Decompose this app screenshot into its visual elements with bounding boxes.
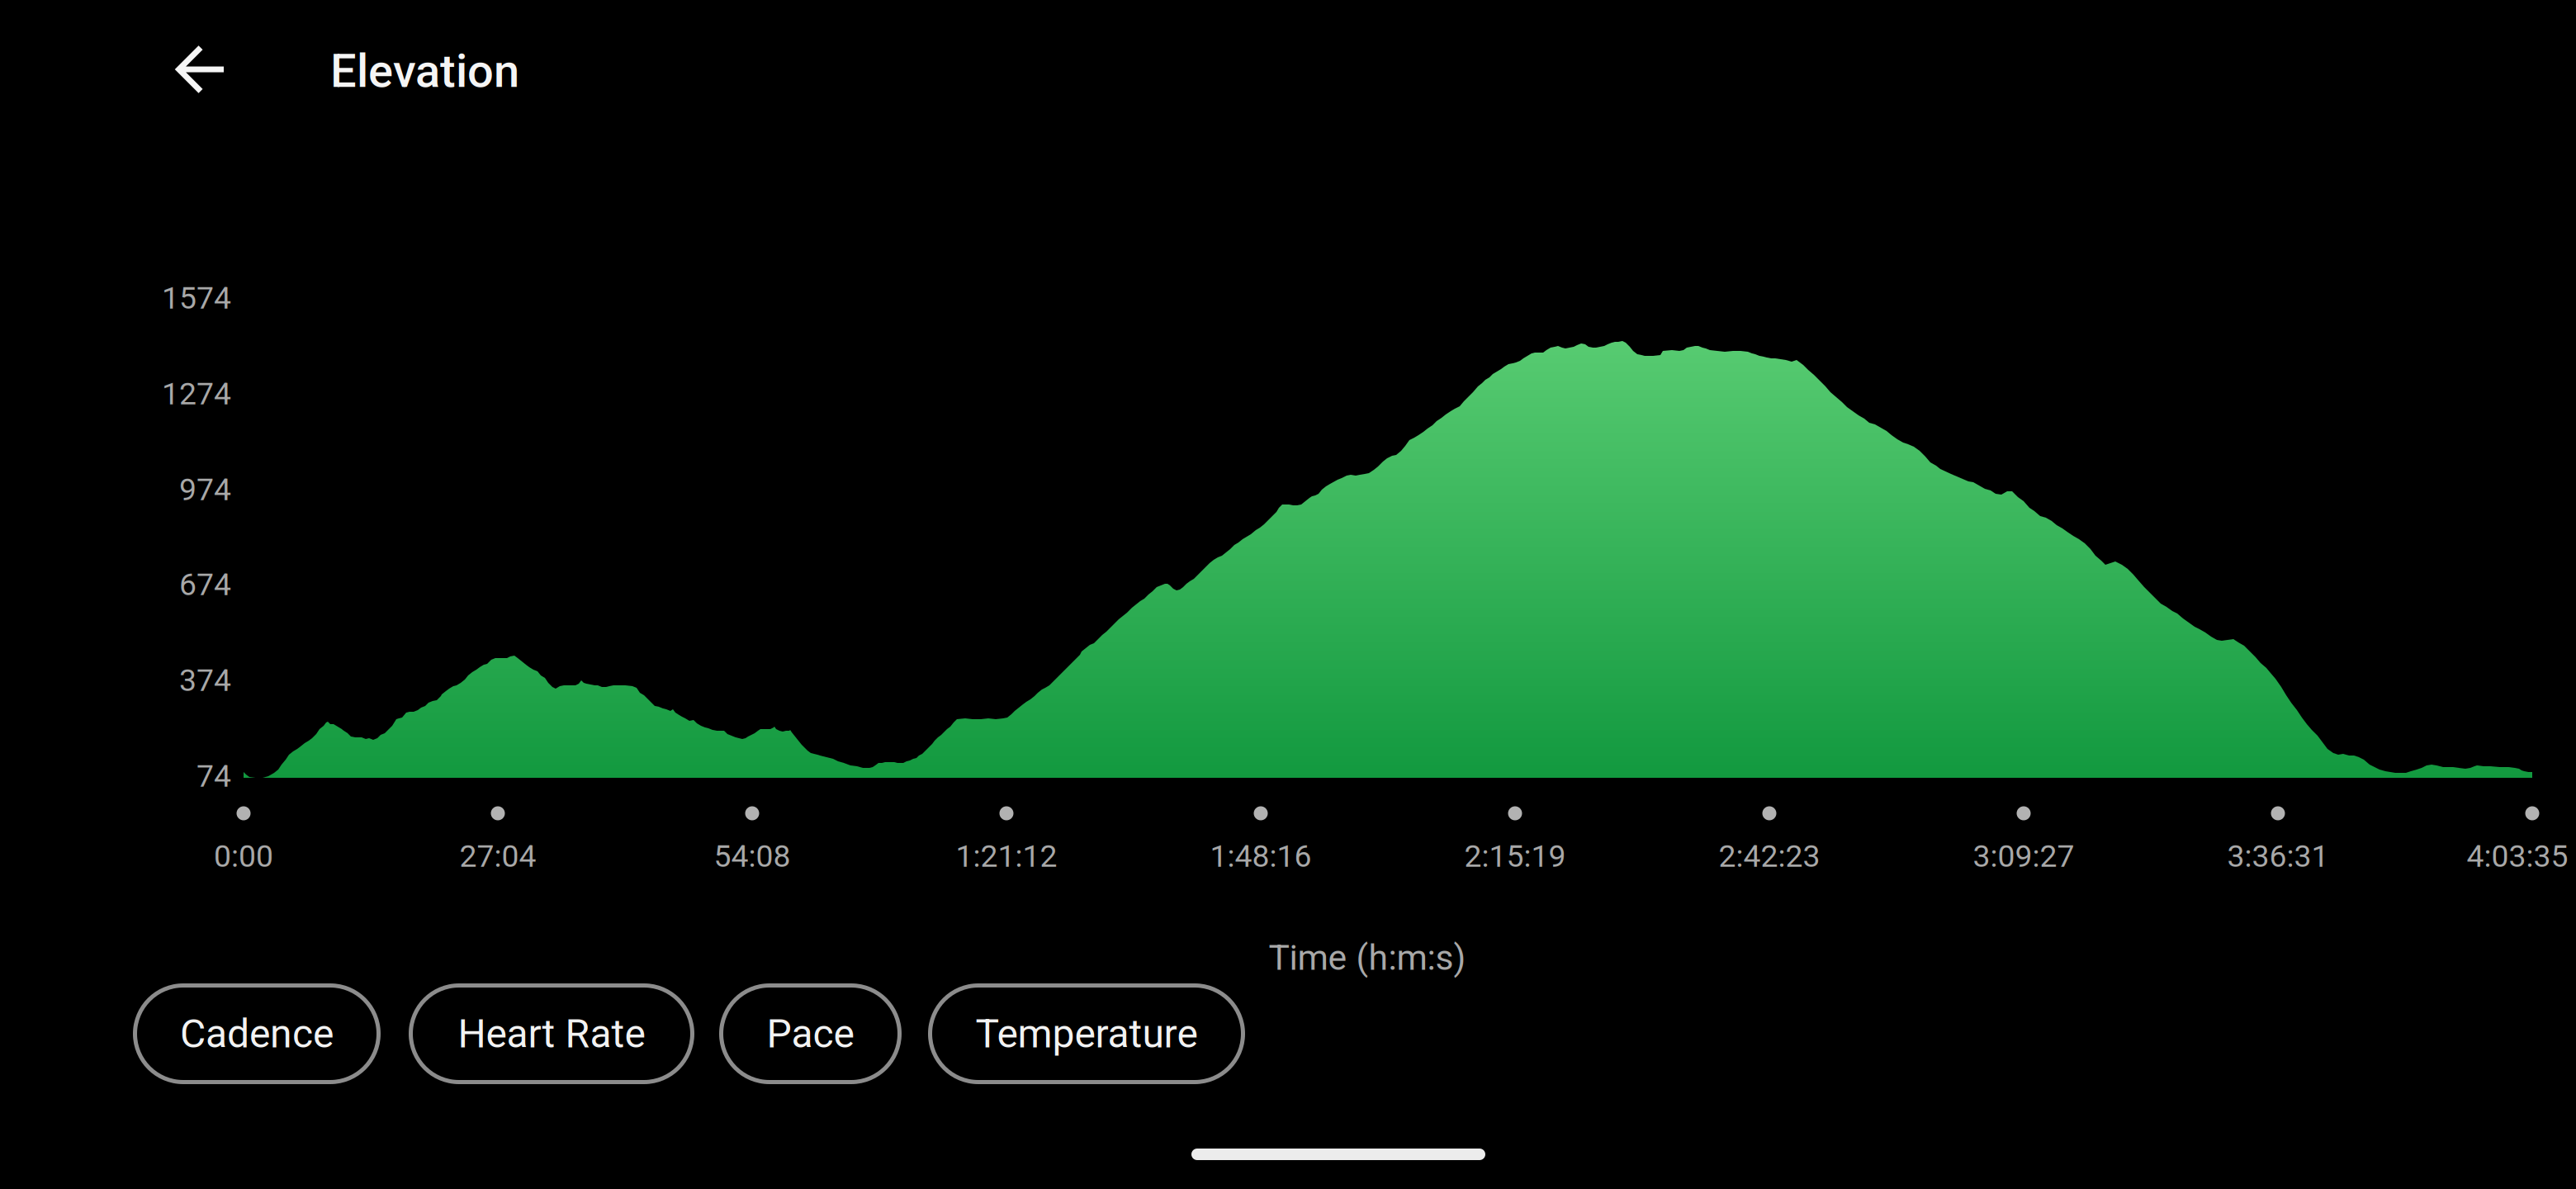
staticText: 2:15:19 [1464, 838, 1566, 874]
staticText: 74 [197, 758, 231, 794]
staticText: 54:08 [714, 838, 791, 874]
button[interactable]: Temperature [928, 983, 1245, 1084]
staticText: 1:21:12 [956, 838, 1057, 874]
staticText: Elevation [330, 44, 519, 98]
button[interactable]: Cadence [133, 983, 381, 1084]
staticText: 1574 [162, 280, 231, 316]
staticText: 2:42:23 [1719, 838, 1820, 874]
staticText: 1274 [162, 376, 231, 412]
staticText: Cadence [180, 1011, 334, 1057]
staticText: 674 [179, 567, 231, 603]
staticText: 974 [179, 472, 231, 508]
staticText: 374 [179, 662, 231, 698]
staticText: 4:03:35 [2467, 838, 2568, 874]
button[interactable]: Pace [719, 983, 902, 1084]
button[interactable]: Back [156, 25, 245, 114]
staticText: Heart Rate [458, 1011, 645, 1057]
staticText: Time (h:m:s) [1269, 937, 1466, 978]
staticText: 27:04 [459, 838, 536, 874]
staticText: 3:36:31 [2227, 838, 2329, 874]
staticText: Temperature [975, 1011, 1198, 1057]
button[interactable]: Heart Rate [409, 983, 694, 1084]
staticText: 0:00 [214, 838, 273, 874]
staticText: 1:48:16 [1210, 838, 1312, 874]
staticText: 3:09:27 [1973, 838, 2074, 874]
staticText: Pace [767, 1011, 854, 1057]
